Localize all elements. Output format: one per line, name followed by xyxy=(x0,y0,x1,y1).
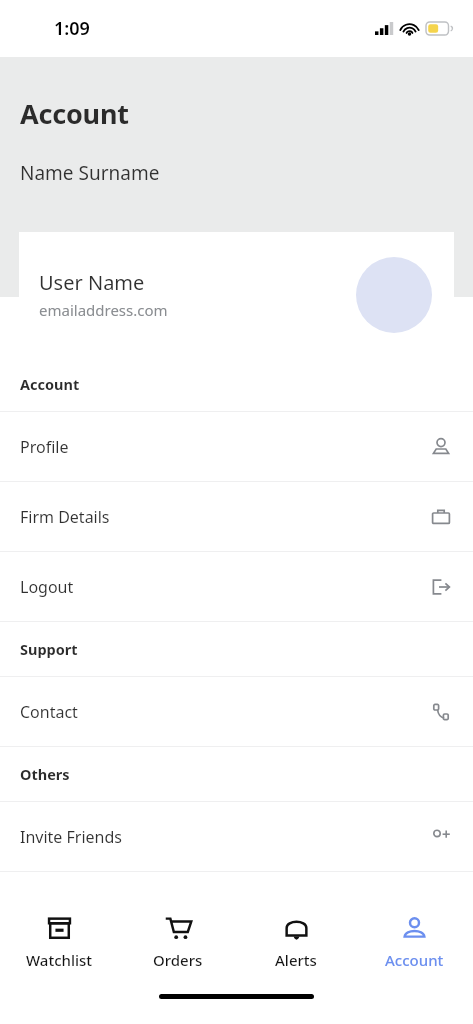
staticText: emailaddress.com xyxy=(39,300,168,320)
button[interactable]: Profile xyxy=(0,412,473,481)
button[interactable]: User Name xyxy=(19,232,454,357)
staticText: 1:09 xyxy=(54,16,90,41)
staticText: Name Surname xyxy=(20,160,160,186)
staticText: Orders xyxy=(153,950,203,970)
staticText: Account xyxy=(20,95,129,132)
staticText: Account xyxy=(385,950,444,970)
staticText: Account xyxy=(20,374,80,394)
staticText: Logout xyxy=(20,576,431,598)
staticText: Profile xyxy=(20,436,431,458)
staticText: Others xyxy=(20,764,70,784)
button[interactable]: Account xyxy=(355,898,473,988)
staticText: Watchlist xyxy=(26,950,93,970)
button[interactable]: Alerts xyxy=(237,898,355,988)
staticText: Contact xyxy=(20,701,431,723)
button[interactable]: Firm Details xyxy=(0,482,473,551)
staticText: Support xyxy=(20,639,78,659)
button[interactable]: Contact xyxy=(0,677,473,746)
button[interactable]: Logout xyxy=(0,552,473,621)
staticText: Firm Details xyxy=(20,506,431,528)
staticText: User Name xyxy=(39,269,145,296)
button[interactable]: Invite Friends xyxy=(0,802,473,871)
button[interactable]: Orders xyxy=(119,898,237,988)
staticText: Alerts xyxy=(275,950,317,970)
button[interactable]: Watchlist xyxy=(0,898,119,988)
staticText: Invite Friends xyxy=(20,826,431,848)
